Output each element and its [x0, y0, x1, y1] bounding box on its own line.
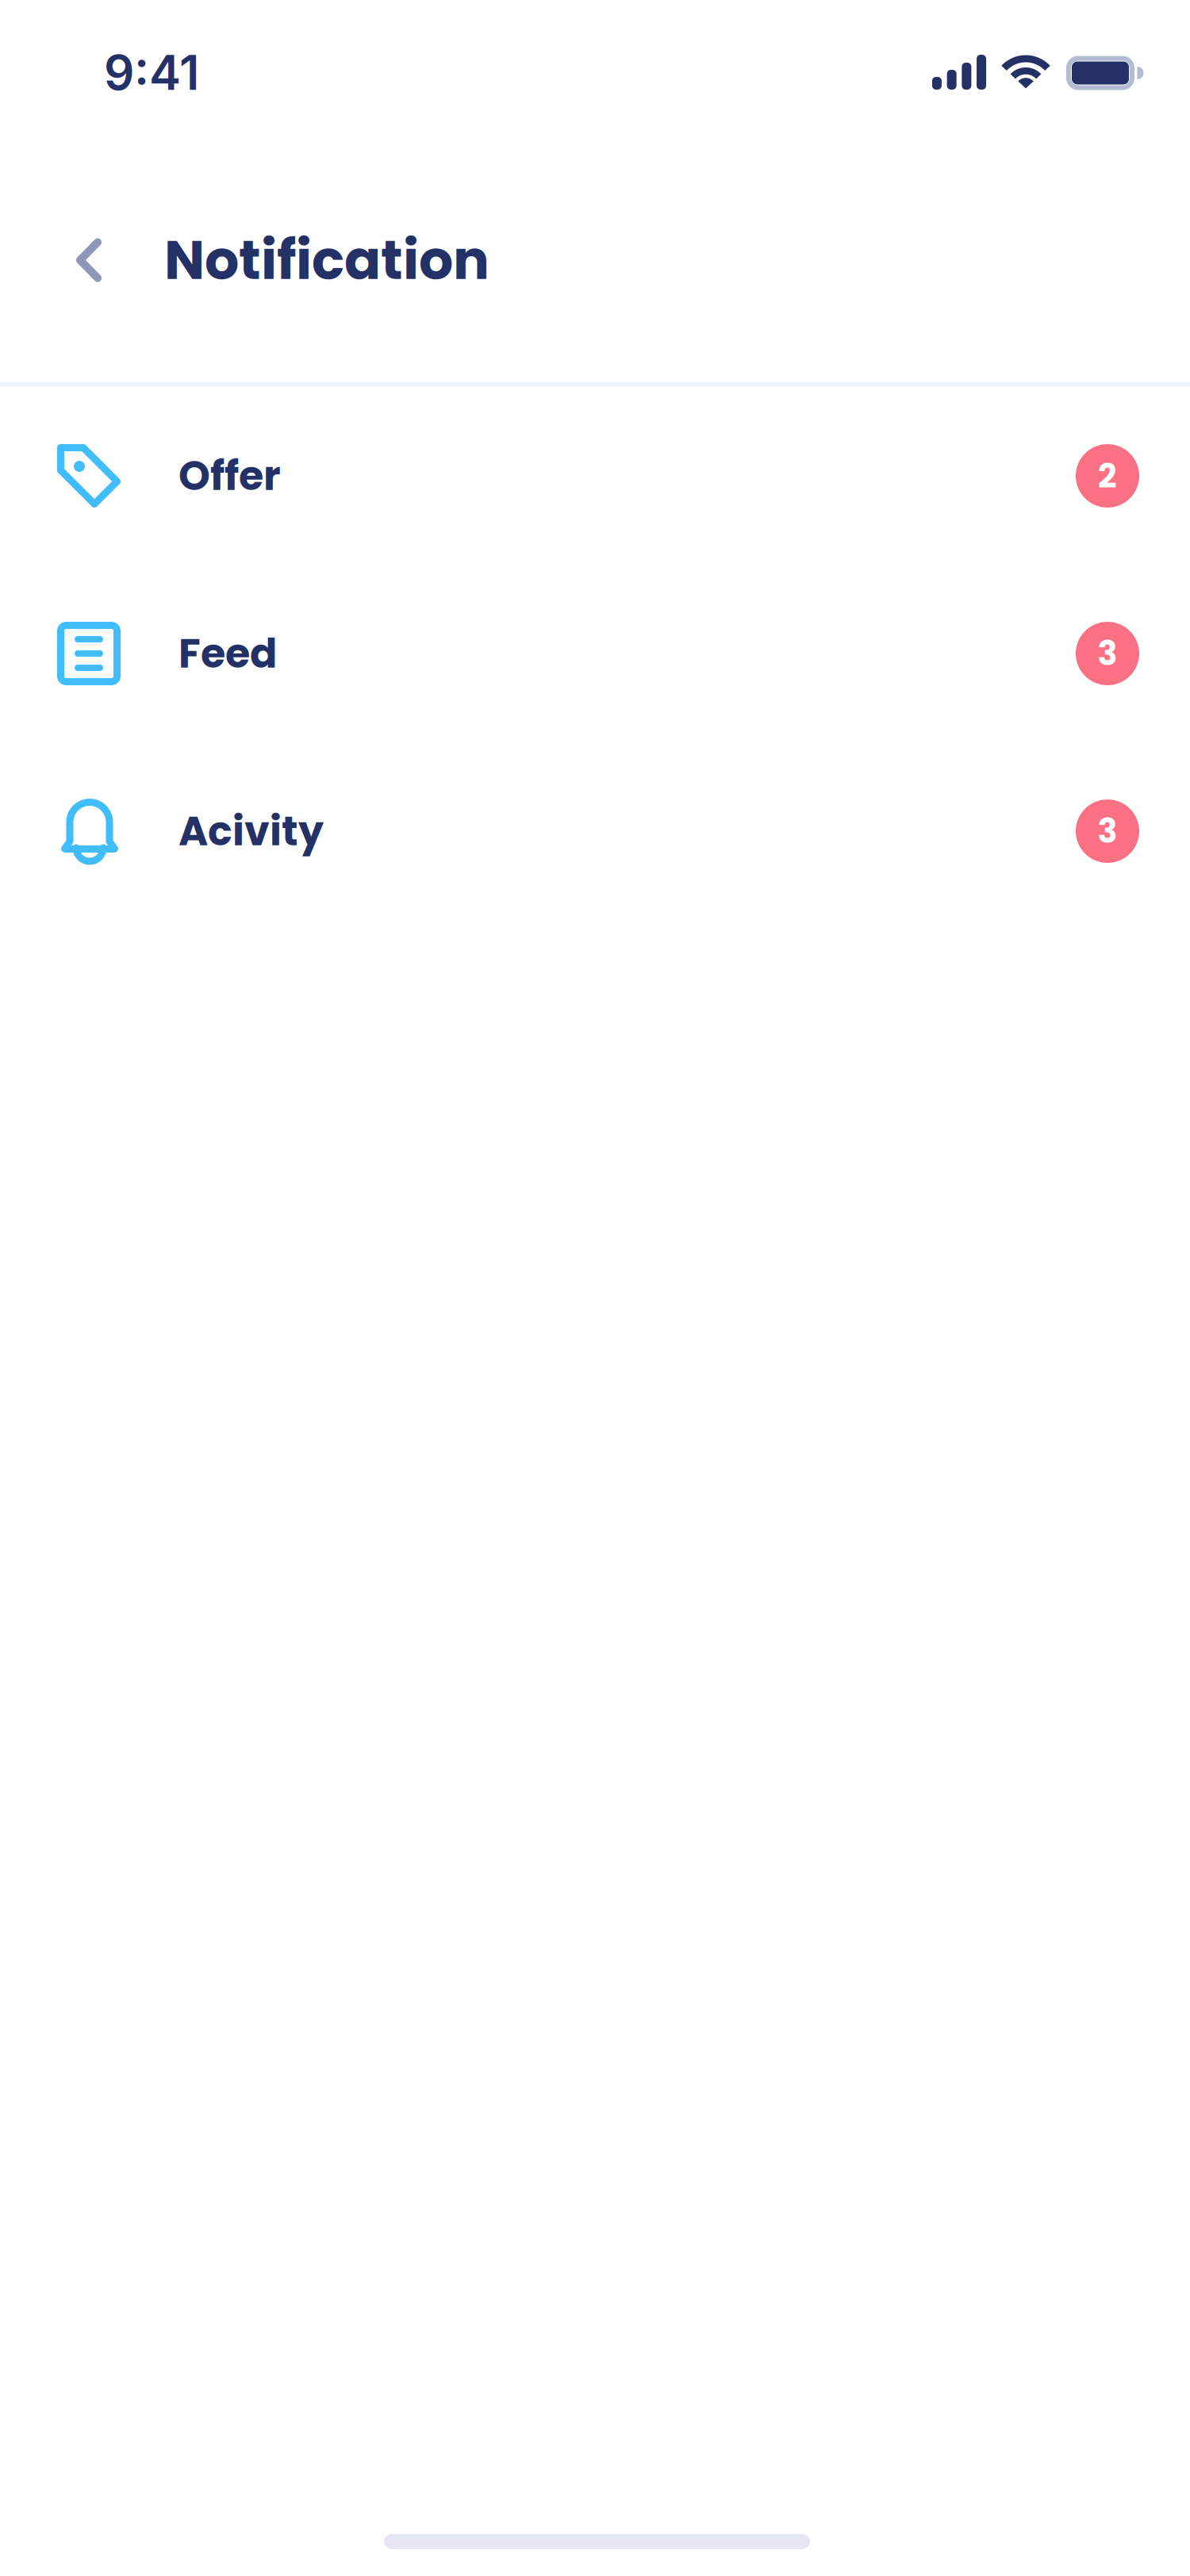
staticText: 9:41	[104, 44, 199, 101]
button[interactable]: Feed	[0, 565, 1190, 742]
staticText: 2	[1098, 453, 1117, 499]
staticText: Notification	[164, 222, 489, 298]
staticText: Offer	[178, 448, 281, 504]
staticText: Acivity	[178, 803, 324, 859]
button[interactable]: Acivity	[0, 742, 1190, 920]
button[interactable]: Offer	[0, 387, 1190, 565]
staticText: 3	[1098, 808, 1117, 854]
staticText: 3	[1098, 631, 1117, 677]
button[interactable]: Back	[76, 217, 164, 304]
staticText: Feed	[178, 625, 277, 682]
